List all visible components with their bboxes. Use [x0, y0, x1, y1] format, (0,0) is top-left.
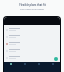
- button[interactable]: [4, 26, 60, 33]
- button[interactable]: Tab 0: [4, 62, 18, 72]
- staticText: Flexible plans that fit: [19, 3, 46, 7]
- button[interactable]: Tab 1: [18, 62, 32, 72]
- staticText: your needs and budget: [20, 8, 44, 11]
- button[interactable]: [4, 54, 60, 61]
- button[interactable]: Tab 3: [46, 62, 60, 72]
- button[interactable]: [4, 47, 60, 54]
- button[interactable]: [4, 33, 60, 40]
- button[interactable]: [4, 40, 60, 47]
- button[interactable]: Tab 2: [32, 62, 46, 72]
- button[interactable]: Add: [54, 57, 58, 61]
